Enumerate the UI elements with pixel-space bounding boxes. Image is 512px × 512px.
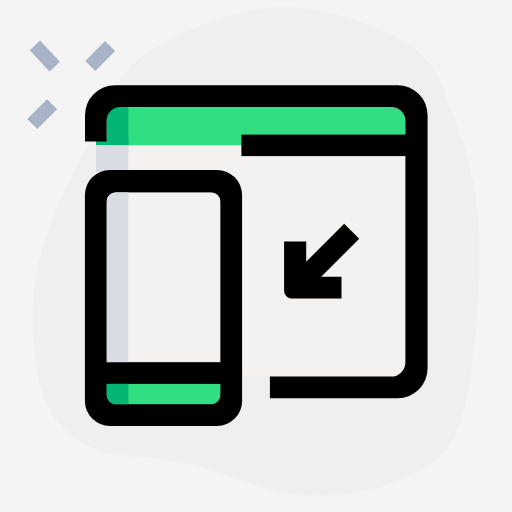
- button[interactable]: Responsive design illustration: [0, 0, 512, 512]
